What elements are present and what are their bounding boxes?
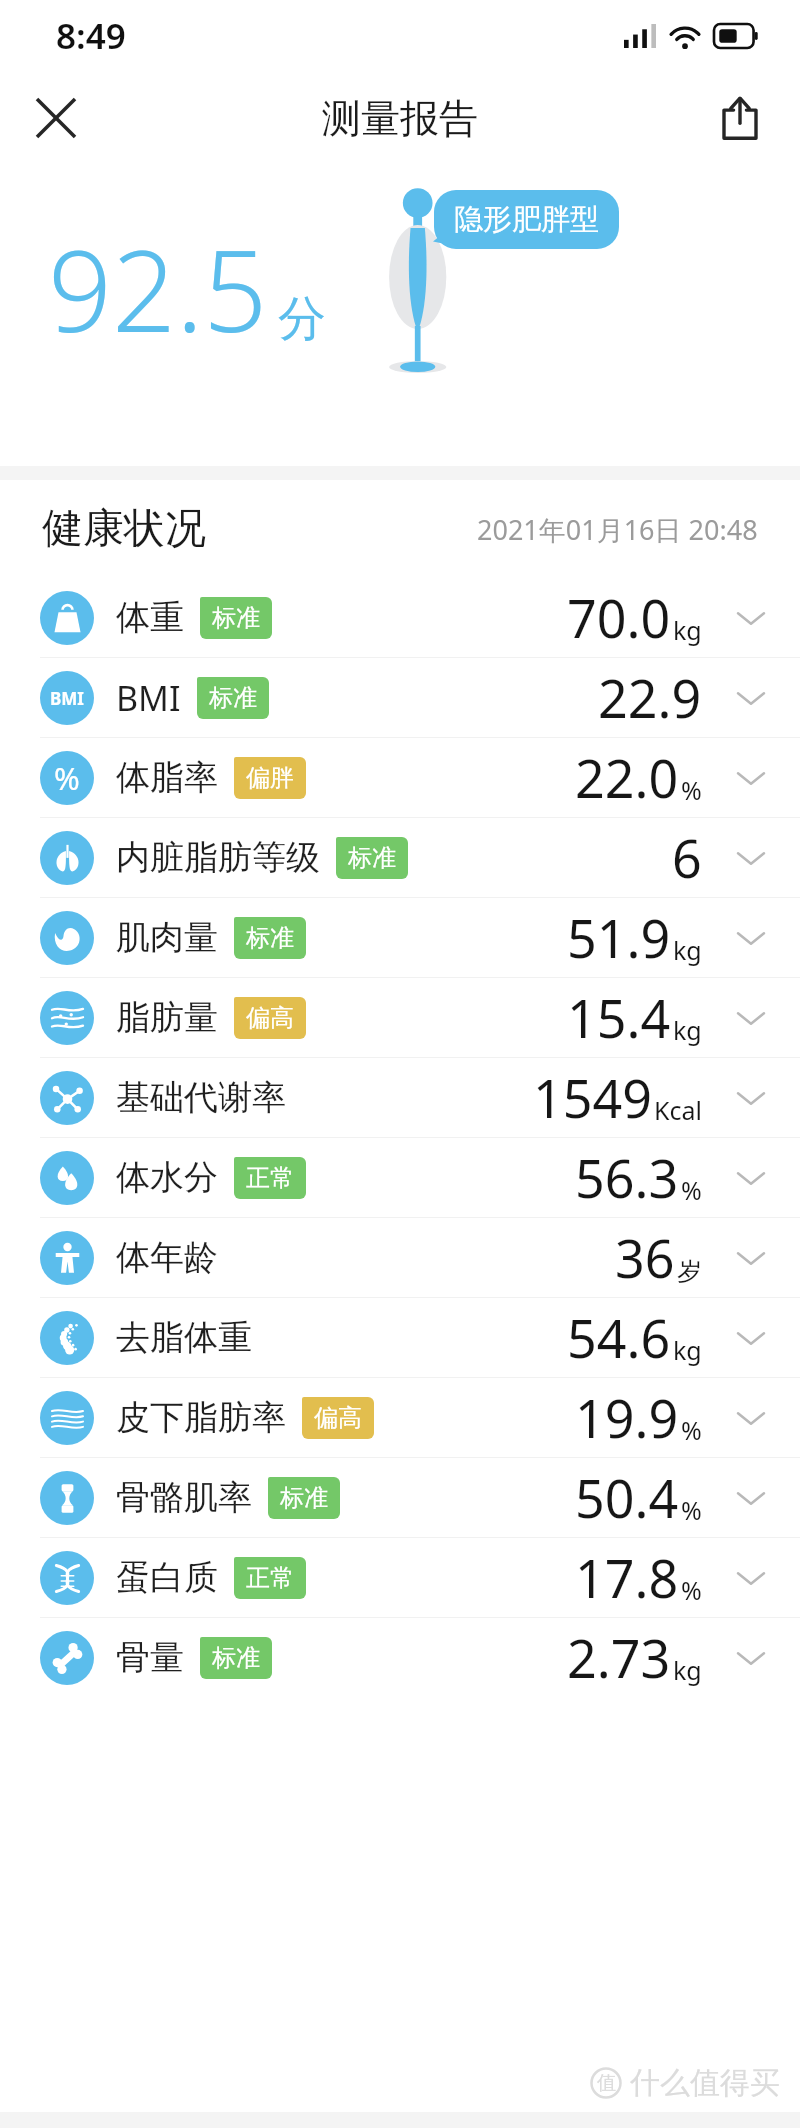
button[interactable]: 内脏脂肪等级 xyxy=(0,818,800,897)
button[interactable]: 体年龄 xyxy=(0,1218,800,1297)
staticText: % xyxy=(681,773,702,807)
staticText: 54.6 xyxy=(567,1302,671,1373)
staticText: % xyxy=(681,1573,702,1607)
staticText: 蛋白质 xyxy=(116,1556,218,1599)
other: 展开 体重 xyxy=(728,595,774,641)
staticText: 标准 xyxy=(209,683,257,713)
staticText: 56.3 xyxy=(575,1142,679,1213)
staticText: 肌肉量 xyxy=(116,916,218,959)
staticText: 岁 xyxy=(677,1256,702,1287)
staticText: 基础代谢率 xyxy=(116,1076,286,1119)
staticText: 1549 xyxy=(533,1062,652,1133)
staticText: 体年龄 xyxy=(116,1236,218,1279)
staticText: 健康状况 xyxy=(42,503,206,555)
staticText: 脂肪量 xyxy=(116,996,218,1039)
staticText: 测量报告 xyxy=(322,94,478,143)
staticText: 分 xyxy=(278,289,326,349)
button[interactable]: 蛋白质 xyxy=(0,1538,800,1617)
button[interactable]: 体水分 xyxy=(0,1138,800,1217)
staticText: 2021年01月16日 20:48 xyxy=(477,511,758,548)
staticText: 51.9 xyxy=(567,902,671,973)
staticText: 皮下脂肪率 xyxy=(116,1396,286,1439)
staticText: 6 xyxy=(672,822,702,893)
staticText: 内脏脂肪等级 xyxy=(116,836,320,879)
staticText: kg xyxy=(673,1013,702,1047)
other: 展开 骨骼肌率 xyxy=(728,1475,774,1521)
staticText: % xyxy=(681,1493,702,1527)
staticText: 70.0 xyxy=(567,582,671,653)
other: 展开 皮下脂肪率 xyxy=(728,1395,774,1441)
other: 展开 蛋白质 xyxy=(728,1555,774,1601)
staticText: 19.9 xyxy=(575,1382,679,1453)
other: 展开 体水分 xyxy=(728,1155,774,1201)
staticText: 正常 xyxy=(246,1563,294,1593)
button[interactable]: 脂肪量 xyxy=(0,978,800,1057)
staticText: 标准 xyxy=(348,843,396,873)
staticText: BMI xyxy=(116,675,181,721)
staticText: 17.8 xyxy=(575,1542,679,1613)
other: 展开 体年龄 xyxy=(728,1235,774,1281)
staticText: 2.73 xyxy=(567,1622,671,1693)
button[interactable]: 体重 xyxy=(0,578,800,657)
staticText: 22.0 xyxy=(575,742,679,813)
staticText: Kcal xyxy=(654,1093,702,1127)
staticText: % xyxy=(54,757,80,799)
other: 展开 体脂率 xyxy=(728,755,774,801)
staticText: 体脂率 xyxy=(116,756,218,799)
button[interactable]: 肌肉量 xyxy=(0,898,800,977)
staticText: % xyxy=(681,1413,702,1447)
staticText: kg xyxy=(673,1653,702,1687)
button[interactable]: 去脂体重 xyxy=(0,1298,800,1377)
staticText: 隐形肥胖型 xyxy=(454,201,599,238)
staticText: 偏高 xyxy=(314,1403,362,1433)
other: 展开 去脂体重 xyxy=(728,1315,774,1361)
staticText: 骨量 xyxy=(116,1636,184,1679)
staticText: kg xyxy=(673,613,702,647)
staticText: 体重 xyxy=(116,596,184,639)
staticText: 标准 xyxy=(280,1483,328,1513)
staticText: 标准 xyxy=(246,923,294,953)
staticText: 骨骼肌率 xyxy=(116,1476,252,1519)
button[interactable]: % xyxy=(0,738,800,817)
button[interactable]: BMI xyxy=(0,658,800,737)
staticText: 15.4 xyxy=(567,982,671,1053)
other: 展开 脂肪量 xyxy=(728,995,774,1041)
staticText: 体水分 xyxy=(116,1156,218,1199)
staticText: 去脂体重 xyxy=(116,1316,252,1359)
button[interactable]: 骨量 xyxy=(0,1618,800,1697)
staticText: 36 xyxy=(615,1222,675,1293)
staticText: 92.5 xyxy=(48,212,268,365)
staticText: % xyxy=(681,1173,702,1207)
staticText: 正常 xyxy=(246,1163,294,1193)
staticText: 偏胖 xyxy=(246,763,294,793)
other: 展开 骨量 xyxy=(728,1635,774,1681)
button[interactable]: 基础代谢率 xyxy=(0,1058,800,1137)
staticText: 50.4 xyxy=(575,1462,679,1533)
other: 展开 BMI xyxy=(728,675,774,721)
staticText: 22.9 xyxy=(598,662,702,733)
other: 展开 内脏脂肪等级 xyxy=(728,835,774,881)
button[interactable]: Close xyxy=(18,80,94,156)
staticText: BMI xyxy=(50,687,84,710)
staticText: 标准 xyxy=(212,603,260,633)
staticText: 标准 xyxy=(212,1643,260,1673)
staticText: 什么值得买 xyxy=(630,2064,780,2102)
button[interactable]: Share xyxy=(702,80,778,156)
staticText: 8:49 xyxy=(56,12,126,60)
other: 展开 肌肉量 xyxy=(728,915,774,961)
staticText: kg xyxy=(673,933,702,967)
staticText: 值 xyxy=(597,2071,616,2095)
other: 展开 基础代谢率 xyxy=(728,1075,774,1121)
button[interactable]: 皮下脂肪率 xyxy=(0,1378,800,1457)
button[interactable]: 骨骼肌率 xyxy=(0,1458,800,1537)
staticText: kg xyxy=(673,1333,702,1367)
staticText: 偏高 xyxy=(246,1003,294,1033)
